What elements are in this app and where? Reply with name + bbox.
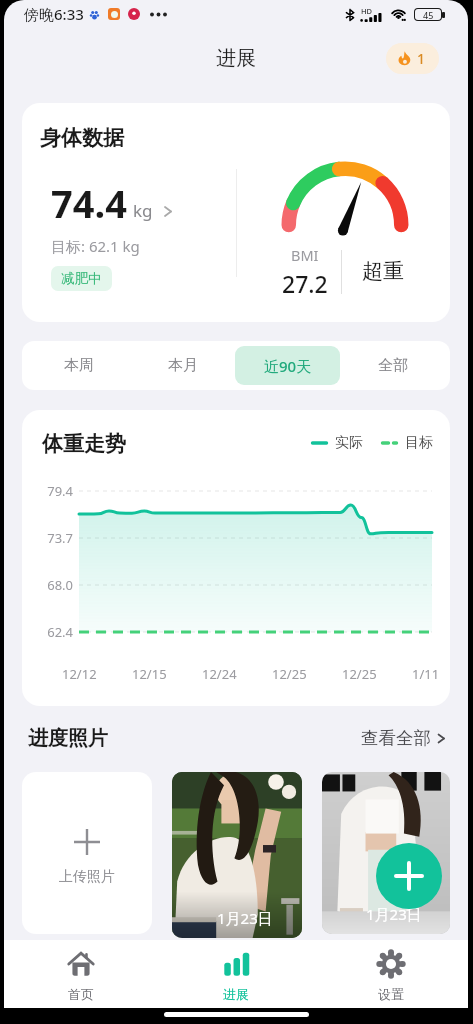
staticText: kg <box>133 199 153 222</box>
staticText: 减肥中 <box>61 270 102 287</box>
staticText: 1月23日 <box>217 908 273 928</box>
button[interactable]: 查看全部 <box>361 727 448 749</box>
staticText: 12/15 <box>132 665 167 683</box>
staticText: 79.4 <box>22 482 73 500</box>
staticText: 73.7 <box>22 529 73 547</box>
staticText: 1/11 <box>412 665 440 683</box>
staticText: HD <box>361 6 373 16</box>
button[interactable]: 1月23日 <box>172 772 302 938</box>
staticText: 1月23日 <box>366 904 422 924</box>
button[interactable]: 本周 <box>27 346 131 385</box>
staticText: BMI <box>291 245 319 265</box>
staticText: 74.4 <box>51 177 127 229</box>
button[interactable]: 上传照片 <box>22 772 152 934</box>
staticText: 12/12 <box>62 665 97 683</box>
button[interactable]: Add photo <box>376 843 442 909</box>
staticText: 45 <box>423 9 434 20</box>
staticText: 查看全部 <box>361 727 431 749</box>
staticText: 傍晚6:33 <box>24 4 84 24</box>
staticText: 全部 <box>378 356 408 375</box>
button[interactable]: 74.4 <box>51 177 175 229</box>
staticText: 上传照片 <box>59 868 115 886</box>
staticText: 设置 <box>378 986 404 1002</box>
staticText: 目标 <box>405 434 433 452</box>
staticText: 68.0 <box>22 576 73 594</box>
button[interactable]: 1 <box>386 43 439 74</box>
staticText: 进展 <box>223 986 249 1002</box>
staticText: 首页 <box>68 986 94 1002</box>
staticText: 近90天 <box>264 356 312 376</box>
staticText: 12/25 <box>272 665 307 683</box>
button[interactable]: 近90天 <box>235 346 340 385</box>
staticText: 1 <box>417 49 426 68</box>
staticText: 本月 <box>168 356 198 375</box>
staticText: 实际 <box>335 434 363 452</box>
staticText: 体重走势 <box>42 431 126 457</box>
button[interactable]: 1月23日 <box>322 772 450 934</box>
button[interactable]: 首页 <box>4 940 158 1008</box>
button[interactable]: 设置 <box>313 940 468 1008</box>
button[interactable]: 全部 <box>340 346 445 385</box>
staticText: 本周 <box>64 356 94 375</box>
staticText: 身体数据 <box>40 125 124 151</box>
button[interactable]: 进展 <box>158 940 313 1008</box>
staticText: 12/24 <box>202 665 237 683</box>
staticText: 62.4 <box>22 623 73 641</box>
staticText: 超重 <box>362 258 404 284</box>
staticText: 目标: 62.1 kg <box>51 236 140 256</box>
staticText: 27.2 <box>282 268 328 299</box>
staticText: 12/25 <box>342 665 377 683</box>
staticText: 进展 <box>216 46 256 71</box>
button[interactable]: 本月 <box>131 346 235 385</box>
staticText: 进度照片 <box>28 726 108 751</box>
